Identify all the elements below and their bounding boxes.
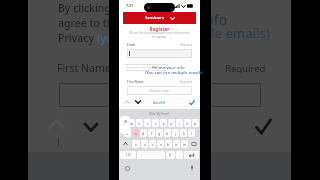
staticText: @ xyxy=(169,153,172,157)
button[interactable]: Dictate xyxy=(190,165,194,172)
staticText: z xyxy=(135,142,137,147)
staticText: c xyxy=(152,142,154,147)
staticText: x xyxy=(144,142,146,147)
button[interactable]: z xyxy=(132,140,140,148)
button[interactable]: k xyxy=(180,129,187,137)
button[interactable]: h xyxy=(164,129,171,137)
staticText: (You can use multiple emails) xyxy=(145,70,204,76)
staticText: a xyxy=(124,118,127,125)
button[interactable]: . xyxy=(176,151,183,159)
staticText: Seminars xyxy=(145,15,164,21)
button[interactable]: Return xyxy=(184,151,199,159)
button[interactable]: v xyxy=(157,140,164,148)
staticText: u xyxy=(170,121,173,126)
staticText: v xyxy=(160,142,162,147)
button[interactable]: d xyxy=(140,129,147,137)
staticText: 123 xyxy=(126,153,131,157)
button[interactable]: Done xyxy=(189,100,195,105)
staticText: p xyxy=(194,121,197,126)
button[interactable]: n xyxy=(173,140,180,148)
staticText: g xyxy=(158,131,161,136)
button[interactable]: c xyxy=(149,140,156,148)
staticText: Privacy Policy (you can unsubscribe) xyxy=(126,68,167,71)
staticText: k xyxy=(183,131,185,136)
staticText: (yo xyxy=(97,31,113,45)
staticText: a xyxy=(126,131,129,136)
staticText: m xyxy=(183,142,187,147)
button[interactable]: @ xyxy=(166,151,175,159)
staticText: q xyxy=(122,121,125,126)
button[interactable]: y xyxy=(160,119,167,127)
staticText: i xyxy=(179,121,180,126)
staticText: t xyxy=(155,121,157,126)
staticText: f xyxy=(151,131,153,136)
staticText: d xyxy=(142,131,145,136)
button[interactable]: 123 xyxy=(120,151,136,159)
staticText: Register xyxy=(119,26,200,33)
button[interactable]: m xyxy=(181,140,188,148)
button[interactable]: AutoFill xyxy=(153,100,166,105)
button[interactable]: t xyxy=(152,119,159,127)
staticText: r xyxy=(147,121,149,126)
staticText: s xyxy=(135,131,137,136)
button[interactable]: Shift xyxy=(120,140,131,148)
staticText: y xyxy=(163,121,165,126)
button[interactable]: s xyxy=(132,129,139,137)
staticText: e xyxy=(138,121,141,126)
staticText: Required xyxy=(180,43,192,47)
button[interactable]: p xyxy=(192,119,199,127)
staticText: agree to the Terms and Conditions and xyxy=(126,65,170,68)
staticText: nfo xyxy=(205,10,228,29)
button[interactable]: Next field xyxy=(135,100,141,104)
button[interactable]: q xyxy=(120,119,127,127)
button[interactable]: b xyxy=(165,140,172,148)
button[interactable]: j xyxy=(172,129,179,137)
staticText: agree to the xyxy=(58,16,120,30)
button[interactable]: a xyxy=(124,129,131,137)
staticText: l xyxy=(191,131,192,136)
button[interactable]: Backspace xyxy=(189,140,199,148)
staticText: Email xyxy=(127,43,136,47)
button[interactable] xyxy=(127,49,192,58)
staticText: Generate Login xyxy=(149,89,170,93)
staticText: b xyxy=(167,142,170,147)
staticText: h xyxy=(166,131,169,136)
button[interactable]: x xyxy=(141,140,148,148)
button[interactable]: Generate Login xyxy=(127,86,192,95)
staticText: Required xyxy=(225,62,266,75)
button[interactable]: g xyxy=(156,129,163,137)
button[interactable]: e xyxy=(136,119,143,127)
button[interactable]: r xyxy=(144,119,151,127)
button[interactable]: i xyxy=(176,119,183,127)
staticText: o xyxy=(186,121,189,126)
staticText: 7:21 xyxy=(126,3,134,8)
staticText: First Name xyxy=(127,80,144,84)
staticText: w xyxy=(130,121,133,126)
staticText: By clicking the Register button, you xyxy=(126,62,166,65)
staticText: . xyxy=(179,153,180,157)
staticText: Required xyxy=(180,80,192,84)
staticText: Fill out your info xyxy=(152,65,185,71)
button[interactable]: f xyxy=(148,129,155,137)
button[interactable]: o xyxy=(184,119,191,127)
button[interactable]: Seminars xyxy=(123,12,196,24)
staticText: ple emails) xyxy=(203,24,271,42)
button[interactable]: l xyxy=(188,129,195,137)
button[interactable]: u xyxy=(168,119,175,127)
button[interactable]: w xyxy=(128,119,135,127)
staticText: n xyxy=(175,142,178,147)
staticText: By clicking t xyxy=(58,1,118,15)
staticText: j xyxy=(175,131,176,136)
staticText: First Name xyxy=(57,61,111,75)
button[interactable]: Previous field xyxy=(124,100,130,104)
staticText: Privacy xyxy=(58,31,97,45)
staticText: Hide My Email xyxy=(149,112,170,116)
staticText: Fill out the form below with your inform… xyxy=(119,31,200,39)
button[interactable]: Emoji xyxy=(125,166,130,171)
